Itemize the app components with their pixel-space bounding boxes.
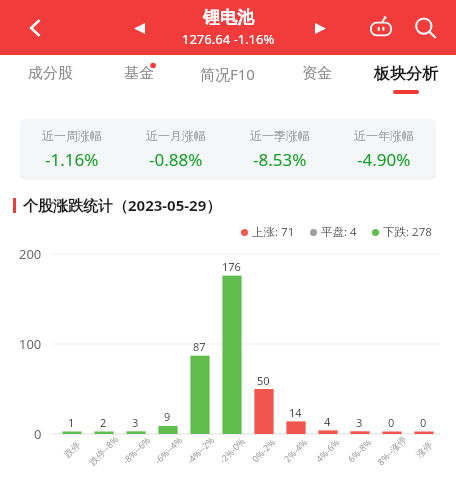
button[interactable]: 板块分析 [361, 55, 450, 102]
button[interactable]: AI assistant [363, 10, 399, 46]
staticText: 上涨: 71 [252, 224, 295, 240]
staticText: 3 [132, 415, 139, 430]
staticText: 0 [34, 425, 42, 443]
staticText: 1276.64 -1.16% [182, 30, 275, 48]
button[interactable]: Back [18, 10, 54, 46]
button[interactable]: 成分股 [6, 55, 94, 102]
button[interactable]: Previous sector [124, 13, 154, 43]
staticText: 3 [356, 415, 363, 430]
button[interactable]: Next sector [305, 13, 335, 43]
staticText: 0%-2% [249, 435, 278, 464]
staticText: 4 [324, 414, 331, 429]
staticText: 近一年涨幅 [354, 128, 414, 143]
button[interactable]: 简况F10 [183, 55, 272, 102]
staticText: 4%-6% [313, 435, 342, 464]
staticText: 8%--涨停 [374, 433, 409, 467]
button[interactable]: 基金 [94, 55, 183, 102]
staticText: -2%-0% [216, 434, 247, 465]
staticText: 跌停 [62, 439, 82, 460]
staticText: 锂电池 [203, 7, 254, 28]
staticText: 基金 [124, 64, 154, 83]
staticText: 近一周涨幅 [42, 128, 102, 143]
staticText: 简况F10 [200, 64, 255, 84]
button[interactable]: 上涨: 71 [241, 224, 295, 240]
button[interactable]: 个股涨跌统计（2023-05-29） [13, 195, 456, 215]
staticText: 2 [100, 415, 107, 430]
staticText: -6%--4% [152, 434, 184, 466]
staticText: 平盘: 4 [321, 224, 357, 240]
staticText: 涨停 [414, 439, 434, 460]
staticText: 近一季涨幅 [250, 128, 310, 143]
staticText: -4%--2% [184, 434, 216, 466]
staticText: -0.88% [149, 148, 203, 171]
staticText: 9 [164, 409, 171, 424]
button[interactable]: 近一周涨幅 [20, 119, 436, 180]
staticText: 2%-4% [281, 435, 310, 464]
button[interactable]: 平盘: 4 [310, 224, 357, 240]
staticText: 200 [19, 245, 42, 263]
staticText: 成分股 [28, 64, 73, 83]
staticText: 0 [420, 415, 427, 430]
staticText: 板块分析 [374, 64, 438, 84]
staticText: 100 [19, 335, 42, 353]
staticText: 个股涨跌统计（2023-05-29） [23, 195, 222, 215]
staticText: 1 [68, 415, 75, 430]
staticText: -1.16% [45, 148, 99, 171]
staticText: -8.53% [253, 148, 307, 171]
staticText: 资金 [302, 64, 332, 83]
staticText: -8%--6% [120, 434, 152, 466]
staticText: 近一月涨幅 [146, 128, 206, 143]
staticText: 6%-8% [345, 435, 374, 464]
button[interactable]: Search [407, 10, 443, 46]
staticText: -4.90% [357, 148, 411, 171]
staticText: 0 [388, 415, 395, 430]
staticText: 下跌: 278 [383, 224, 432, 240]
staticText: 50 [257, 373, 270, 388]
button[interactable]: 下跌: 278 [372, 224, 432, 240]
staticText: 跌停--8% [86, 433, 121, 467]
button[interactable]: 资金 [272, 55, 361, 102]
staticText: 14 [289, 405, 302, 420]
button[interactable]: 锂电池 [182, 7, 275, 48]
staticText: 87 [193, 339, 206, 354]
staticText: 176 [222, 259, 241, 274]
